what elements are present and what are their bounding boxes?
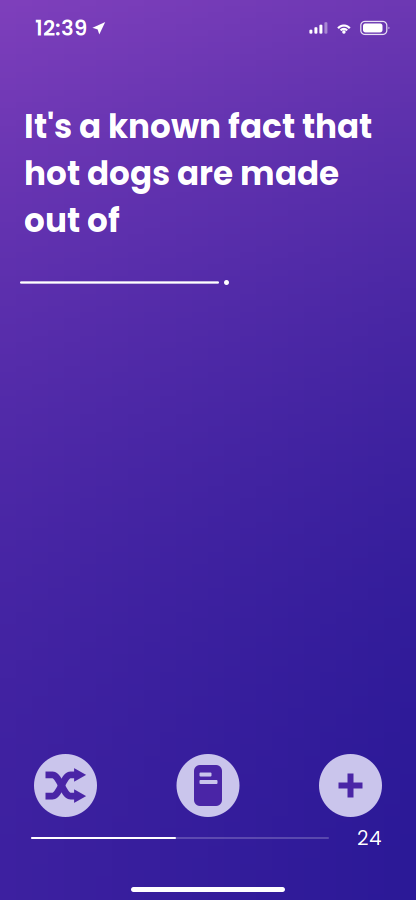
staticText: out of <box>24 198 120 243</box>
button[interactable]: Shuffle <box>34 754 97 817</box>
staticText: 24 <box>357 824 382 852</box>
button[interactable]: Add <box>319 754 382 817</box>
staticText: 12:39 <box>35 13 87 43</box>
staticText: It's a known fact that <box>24 104 372 149</box>
staticText: hot dogs are made <box>24 151 339 196</box>
button[interactable]: Cards <box>176 754 239 817</box>
